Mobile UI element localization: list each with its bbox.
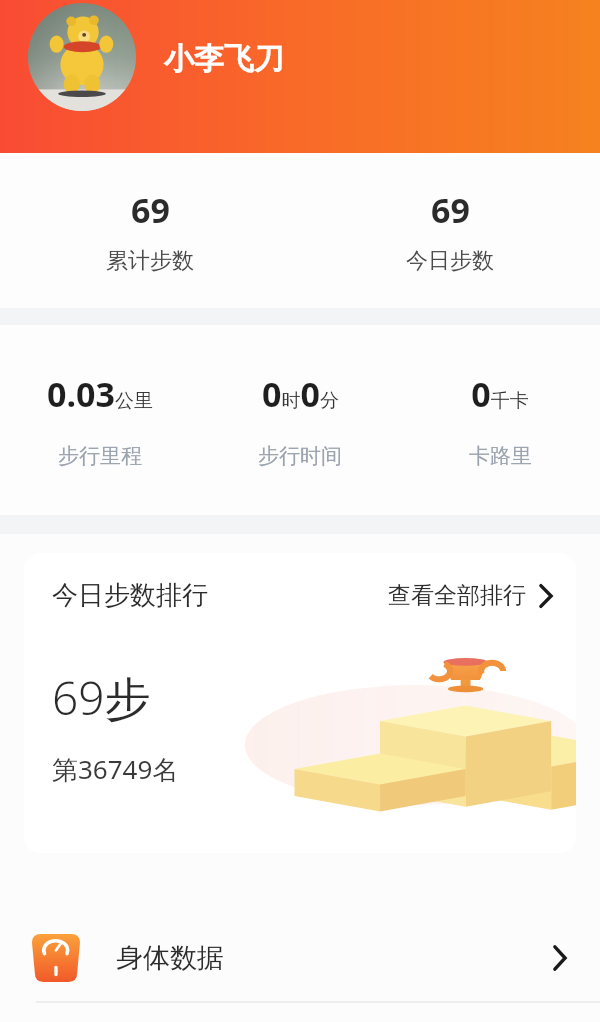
button[interactable]: 身体数据 [0,915,600,1001]
button[interactable]: 查看全部排行 [388,581,554,610]
staticText: 69 [431,187,470,233]
button[interactable]: 0时0分 [200,371,400,469]
button[interactable]: 69 [300,187,600,275]
button[interactable]: 0.03公里 [0,371,200,469]
staticText: 累计步数 [106,247,194,275]
staticText: 69步 [52,666,151,729]
staticText: 小李飞刀 [164,40,284,78]
button[interactable]: 今日步数排行 [24,553,576,853]
button[interactable]: 0千卡 [400,371,600,469]
staticText: 卡路里 [469,443,532,469]
staticText: 69 [131,187,170,233]
staticText: 今日步数 [406,247,494,275]
staticText: 步行时间 [258,443,342,469]
staticText: 0千卡 [471,371,529,417]
button[interactable]: 69 [0,187,300,275]
staticText: 0时0分 [262,371,339,417]
staticText: 查看全部排行 [388,581,526,610]
staticText: 步行里程 [58,443,142,469]
button[interactable]: 小李飞刀 [28,3,284,111]
staticText: 身体数据 [116,941,224,975]
staticText: 第36749名 [52,751,179,787]
staticText: 0.03公里 [47,371,153,417]
staticText: 今日步数排行 [52,579,208,612]
